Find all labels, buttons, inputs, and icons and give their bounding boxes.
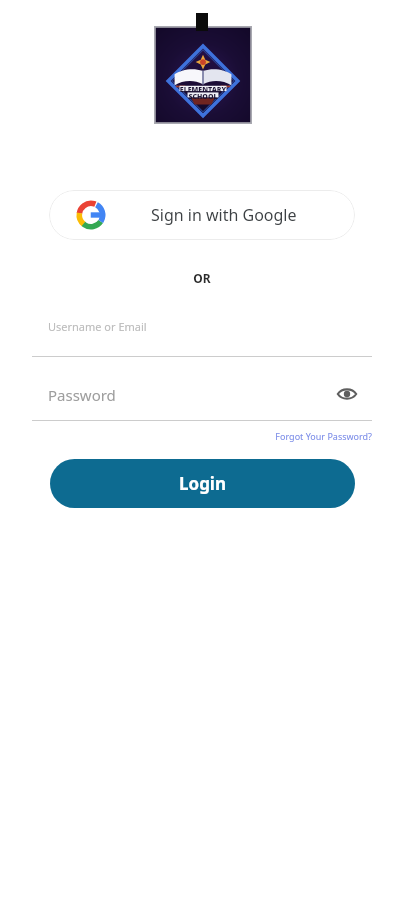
staticText: Login [179, 472, 227, 495]
staticText: Sign in with Google [151, 204, 297, 226]
staticText: OR [0, 270, 404, 286]
staticText: Forgot Your Password? [275, 430, 372, 442]
staticText: Password [48, 385, 116, 405]
staticText: SCHOOL [154, 92, 252, 102]
staticText: Username or Email [48, 319, 147, 334]
staticText: ELEMENTARY [154, 85, 252, 95]
button[interactable]: Show password [331, 378, 363, 410]
button[interactable]: Forgot Your Password? [252, 427, 372, 445]
button[interactable]: Username or Email [32, 303, 372, 357]
button[interactable]: Sign in with Google [49, 190, 355, 240]
button[interactable]: Login [50, 459, 355, 508]
button[interactable]: Password [32, 370, 322, 420]
